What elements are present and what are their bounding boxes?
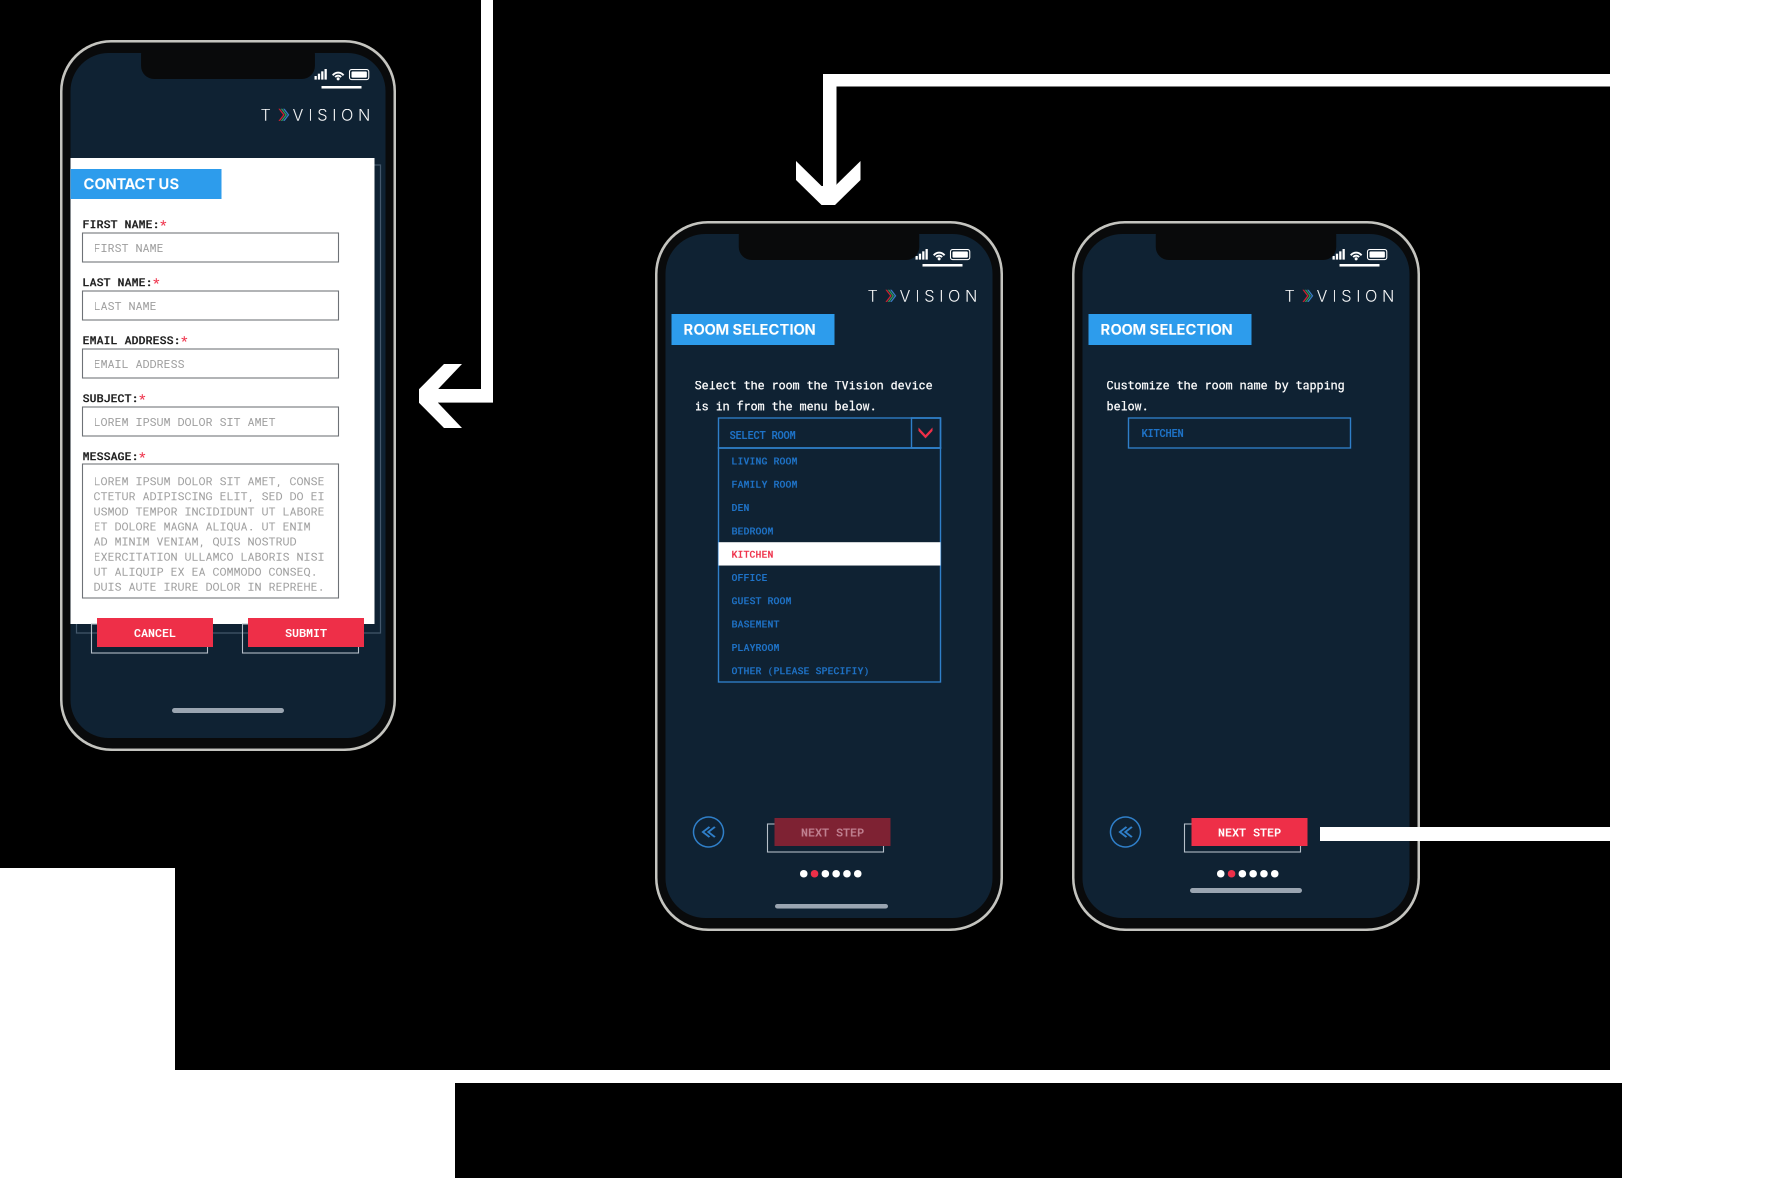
- staticText: DUIS AUTE IRURE DOLOR IN REPREHE.: [93, 578, 324, 594]
- button[interactable]: KITCHEN: [718, 542, 940, 565]
- staticText: ROOM SELECTION: [683, 321, 815, 338]
- staticText: LAST NAME:: [82, 274, 152, 289]
- staticText: T: [260, 105, 270, 125]
- staticText: EMAIL ADDRESS:: [82, 332, 180, 347]
- button[interactable]: SUBMIT: [242, 618, 364, 653]
- staticText: FIRST NAME: [93, 240, 163, 255]
- staticText: LIVING ROOM: [731, 454, 797, 467]
- staticText: BEDROOM: [731, 524, 773, 537]
- staticText: AD MINIM VENIAM, QUIS NOSTRUD: [93, 533, 296, 549]
- staticText: NEXT STEP: [801, 824, 864, 840]
- staticText: *: [138, 390, 145, 405]
- staticText: OTHER (PLEASE SPECIFIY): [731, 664, 869, 677]
- staticText: USMOD TEMPOR INCIDIDUNT UT LABORE: [93, 503, 324, 519]
- staticText: O: [341, 105, 353, 125]
- staticText: I: [915, 286, 919, 306]
- staticText: I: [939, 286, 943, 306]
- staticText: N: [965, 286, 977, 306]
- staticText: V: [1317, 286, 1328, 306]
- button[interactable]: ROOM SELECTION: [1088, 314, 1251, 345]
- button[interactable]: GUEST ROOM: [718, 589, 940, 612]
- button[interactable]: NEXT STEP: [767, 818, 890, 852]
- staticText: Customize the room name by tapping: [1106, 377, 1344, 393]
- staticText: LOREM IPSUM DOLOR SIT AMET: [93, 414, 275, 429]
- staticText: MESSAGE:: [82, 448, 138, 463]
- staticText: KITCHEN: [731, 547, 773, 560]
- staticText: EMAIL ADDRESS: [93, 356, 184, 371]
- button[interactable]: SELECT ROOM: [718, 418, 940, 448]
- staticText: PLAYROOM: [731, 640, 779, 653]
- staticText: ROOM SELECTION: [1100, 321, 1232, 338]
- staticText: KITCHEN: [1141, 426, 1183, 440]
- staticText: ET DOLORE MAGNA ALIQUA. UT ENIM: [93, 518, 310, 534]
- staticText: LAST NAME: [93, 298, 156, 313]
- staticText: *: [138, 448, 145, 463]
- staticText: N: [358, 105, 370, 125]
- staticText: S: [924, 286, 934, 306]
- staticText: O: [948, 286, 960, 306]
- staticText: T: [867, 286, 877, 306]
- staticText: EXERCITATION ULLAMCO LABORIS NISI: [93, 548, 324, 564]
- staticText: LOREM IPSUM DOLOR SIT AMET, CONSE: [93, 473, 324, 488]
- staticText: BASEMENT: [731, 617, 779, 630]
- staticText: I: [308, 105, 312, 125]
- staticText: NEXT STEP: [1218, 824, 1281, 840]
- staticText: DEN: [731, 501, 749, 514]
- staticText: *: [180, 332, 187, 347]
- button[interactable]: DEN: [718, 496, 940, 519]
- button[interactable]: Back: [1110, 817, 1140, 847]
- button[interactable]: CONTACT US: [70, 169, 221, 199]
- staticText: *: [159, 216, 166, 231]
- button[interactable]: BEDROOM: [718, 519, 940, 542]
- staticText: Select the room the TVision device: [694, 377, 932, 393]
- staticText: I: [1356, 286, 1360, 306]
- staticText: CTETUR ADIPISCING ELIT, SED DO EI: [93, 488, 324, 504]
- button[interactable]: NEXT STEP: [1184, 818, 1307, 852]
- staticText: SUBMIT: [285, 625, 327, 640]
- staticText: *: [152, 274, 159, 289]
- button[interactable]: PLAYROOM: [718, 635, 940, 659]
- staticText: FAMILY ROOM: [731, 477, 797, 490]
- button[interactable]: FAMILY ROOM: [718, 472, 940, 496]
- staticText: SUBJECT:: [82, 390, 138, 405]
- staticText: CONTACT US: [83, 175, 179, 193]
- button[interactable]: OTHER (PLEASE SPECIFIY): [718, 659, 940, 682]
- button[interactable]: LIVING ROOM: [718, 449, 940, 472]
- staticText: O: [1365, 286, 1377, 306]
- staticText: V: [293, 105, 304, 125]
- button[interactable]: BASEMENT: [718, 612, 940, 635]
- staticText: I: [1332, 286, 1336, 306]
- button[interactable]: OFFICE: [718, 565, 940, 589]
- staticText: S: [317, 105, 327, 125]
- staticText: FIRST NAME:: [82, 216, 159, 231]
- staticText: is in from the menu below.: [694, 398, 876, 414]
- staticText: UT ALIQUIP EX EA COMMODO CONSEQ.: [93, 563, 317, 579]
- button[interactable]: CANCEL: [91, 618, 213, 653]
- button[interactable]: ROOM SELECTION: [671, 314, 834, 345]
- staticText: GUEST ROOM: [731, 594, 791, 607]
- staticText: N: [1382, 286, 1394, 306]
- staticText: OFFICE: [731, 571, 767, 584]
- staticText: V: [900, 286, 911, 306]
- staticText: I: [332, 105, 336, 125]
- staticText: SELECT ROOM: [729, 428, 795, 442]
- staticText: CANCEL: [134, 625, 176, 640]
- staticText: below.: [1106, 398, 1148, 414]
- button[interactable]: Back: [693, 817, 723, 847]
- button[interactable]: KITCHEN: [1128, 418, 1350, 448]
- staticText: T: [1284, 286, 1294, 306]
- staticText: S: [1341, 286, 1351, 306]
